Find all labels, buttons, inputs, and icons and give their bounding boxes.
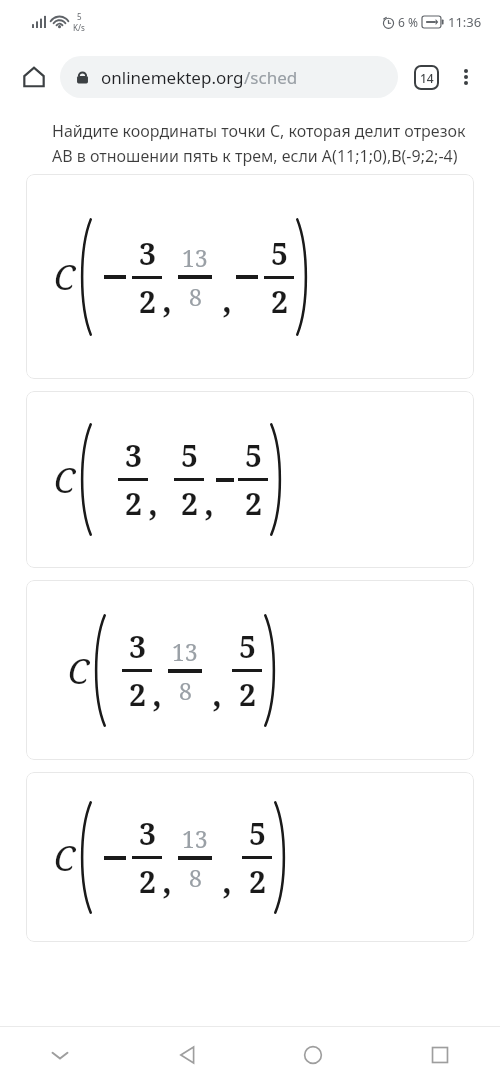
staticText: 5 — [181, 435, 198, 476]
button[interactable]: Tabs, 14 open — [406, 57, 446, 97]
staticText: , — [204, 479, 214, 525]
staticText: 2 — [139, 861, 156, 902]
staticText: 2 — [271, 281, 288, 322]
button[interactable]: C — [26, 580, 474, 760]
staticText: , — [222, 857, 232, 903]
button[interactable]: C — [26, 391, 474, 568]
staticText: 13 — [182, 823, 208, 854]
staticText: , — [222, 276, 232, 322]
button[interactable]: C — [26, 772, 474, 942]
staticText: C — [54, 457, 76, 503]
staticText: , — [152, 670, 162, 716]
staticText: 5 — [239, 626, 256, 667]
staticText: C — [54, 254, 76, 300]
staticText: 5 — [245, 435, 262, 476]
staticText: 8 — [189, 862, 202, 893]
staticText: Найдите координаты точки C, которая дели… — [52, 120, 474, 166]
staticText: 5 — [77, 11, 82, 22]
staticText: 3 — [139, 813, 156, 854]
button[interactable]: Home — [287, 1029, 339, 1081]
button[interactable]: onlinemektep.org — [60, 56, 398, 98]
staticText: 3 — [125, 435, 142, 476]
staticText: 11:36 — [448, 13, 482, 31]
staticText: , — [162, 857, 172, 903]
button[interactable]: C — [26, 174, 474, 379]
staticText: , — [212, 670, 222, 716]
staticText: C — [54, 835, 76, 881]
staticText: 5 — [249, 813, 266, 854]
staticText: 8 — [189, 281, 202, 312]
staticText: onlinemektep.org — [101, 66, 244, 89]
staticText: 2 — [125, 483, 142, 524]
staticText: 2 — [139, 281, 156, 322]
staticText: 14 — [420, 70, 434, 86]
staticText: C — [68, 648, 90, 694]
button[interactable]: Home — [14, 57, 54, 97]
staticText: 2 — [239, 674, 256, 715]
staticText: 2 — [245, 483, 262, 524]
staticText: 3 — [139, 233, 156, 274]
button[interactable]: Hide keyboard — [34, 1029, 86, 1081]
staticText: 13 — [182, 242, 208, 273]
staticText: 2 — [129, 674, 146, 715]
staticText: 5 — [271, 233, 288, 274]
button[interactable]: Recents — [414, 1029, 466, 1081]
staticText: , — [162, 276, 172, 322]
staticText: /sched — [244, 66, 298, 89]
button[interactable]: Back — [161, 1029, 213, 1081]
staticText: 8 — [179, 675, 192, 706]
staticText: , — [148, 479, 158, 525]
staticText: 2 — [181, 483, 198, 524]
button[interactable]: More options — [446, 57, 486, 97]
staticText: 2 — [249, 861, 266, 902]
staticText: 3 — [129, 626, 146, 667]
staticText: 6 % — [398, 14, 418, 30]
staticText: K/s — [73, 22, 85, 33]
staticText: 13 — [172, 636, 198, 667]
